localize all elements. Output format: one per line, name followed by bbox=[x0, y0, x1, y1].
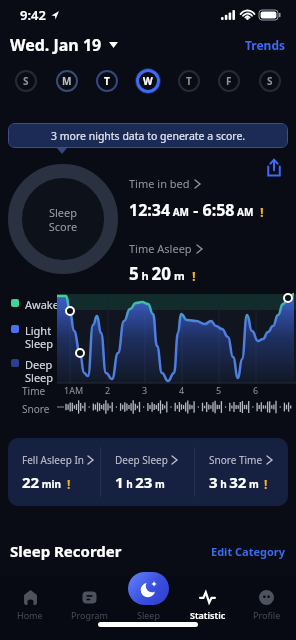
staticText: Awake bbox=[25, 297, 59, 312]
button[interactable]: T bbox=[176, 68, 202, 94]
staticText: Program bbox=[71, 609, 108, 621]
staticText: T bbox=[186, 74, 192, 88]
staticText: Trends bbox=[245, 37, 286, 53]
button[interactable]: Statistic bbox=[178, 560, 237, 621]
staticText: W bbox=[143, 74, 153, 88]
staticText: Home bbox=[17, 609, 43, 621]
staticText: 3 more nights data to generate a score. bbox=[51, 129, 246, 143]
staticText: 4 bbox=[179, 384, 185, 396]
staticText: 22 min bbox=[22, 472, 62, 492]
staticText: S bbox=[23, 74, 29, 88]
staticText: Snore Time bbox=[209, 453, 263, 467]
button[interactable]: Deep Sleep bbox=[101, 453, 194, 492]
staticText: 5 h 20 m bbox=[129, 262, 185, 285]
staticText: Time in bed bbox=[129, 176, 190, 191]
button[interactable]: W bbox=[135, 68, 161, 94]
button[interactable]: Snore Time bbox=[195, 453, 288, 492]
staticText: M bbox=[62, 74, 72, 88]
button[interactable]: Profile bbox=[237, 560, 296, 621]
button[interactable]: Trends bbox=[245, 37, 286, 53]
staticText: ! bbox=[67, 476, 71, 492]
staticText: F bbox=[226, 74, 232, 88]
staticText: Profile bbox=[253, 609, 281, 621]
button[interactable]: Home bbox=[0, 560, 60, 621]
staticText: 12:34 AM - 6:58 AM bbox=[129, 199, 254, 221]
button[interactable]: S bbox=[257, 68, 283, 94]
staticText: Deep Sleep bbox=[115, 453, 168, 467]
staticText: Sleep Recorder bbox=[10, 541, 122, 561]
button[interactable]: Fell Asleep In bbox=[8, 453, 100, 492]
staticText: 3 h 32 m bbox=[209, 472, 259, 492]
staticText: Fell Asleep In bbox=[22, 453, 84, 467]
staticText: 1AM bbox=[64, 384, 84, 396]
button[interactable]: Time in bed bbox=[129, 176, 200, 191]
staticText: 2 bbox=[105, 384, 111, 396]
staticText: Snore bbox=[22, 402, 50, 416]
staticText: 9:42 bbox=[20, 6, 46, 24]
button[interactable]: Wed. Jan 19 bbox=[10, 34, 118, 56]
button[interactable]: Time Asleep bbox=[129, 241, 202, 256]
button[interactable]: 3 more nights data to generate a score. bbox=[8, 123, 288, 148]
staticText: Deep Sleep bbox=[25, 357, 54, 385]
staticText: 6 bbox=[253, 384, 259, 396]
staticText: Sleep Score bbox=[35, 205, 91, 234]
staticText: Time Asleep bbox=[129, 241, 192, 256]
staticText: 3 bbox=[142, 384, 148, 396]
staticText: Edit Category bbox=[211, 544, 286, 559]
staticText: ! bbox=[260, 203, 264, 221]
staticText: T bbox=[104, 74, 110, 88]
staticText: Sleep bbox=[137, 609, 160, 621]
staticText: Wed. Jan 19 bbox=[10, 34, 102, 56]
button[interactable]: F bbox=[216, 68, 242, 94]
staticText: Time bbox=[22, 384, 46, 398]
staticText: 5 bbox=[216, 384, 222, 396]
staticText: Statistic bbox=[190, 609, 226, 621]
button[interactable]: Sleep bbox=[119, 560, 178, 621]
staticText: 1 h 23 m bbox=[115, 472, 165, 492]
staticText: Light Sleep bbox=[25, 323, 54, 351]
button[interactable]: S bbox=[13, 68, 39, 94]
button[interactable]: T bbox=[94, 68, 120, 94]
button[interactable]: M bbox=[54, 68, 80, 94]
button[interactable] bbox=[265, 159, 283, 177]
staticText: S bbox=[267, 74, 273, 88]
button[interactable]: Program bbox=[60, 560, 119, 621]
button[interactable]: Edit Category bbox=[211, 544, 286, 559]
staticText: ! bbox=[264, 476, 268, 492]
staticText: ! bbox=[192, 267, 196, 285]
